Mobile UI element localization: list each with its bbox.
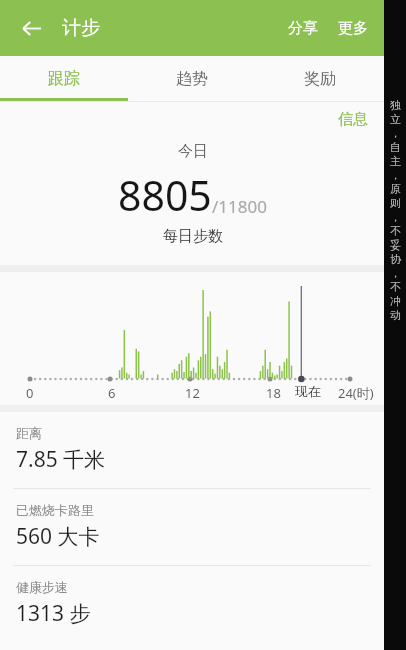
staticText: 12 — [185, 384, 200, 402]
staticText: 自 — [390, 140, 401, 154]
button[interactable]: 跟踪 — [0, 56, 128, 101]
staticText: 则 — [390, 196, 401, 210]
staticText: 0 — [26, 384, 34, 402]
staticText: 24(时) — [338, 384, 374, 402]
staticText: 更多 — [338, 19, 368, 38]
button[interactable]: Back — [8, 5, 54, 51]
button[interactable]: 健康步速 — [0, 565, 384, 642]
staticText: 7.85 千米 — [16, 445, 106, 474]
staticText: 健康步速 — [16, 579, 68, 595]
staticText: ， — [390, 168, 401, 182]
staticText: 协 — [390, 252, 401, 266]
staticText: ， — [390, 210, 401, 224]
staticText: 原 — [390, 182, 401, 196]
staticText: 距离 — [16, 425, 42, 441]
staticText: 信息 — [338, 110, 368, 129]
staticText: 分享 — [288, 19, 318, 38]
button[interactable]: 信息 — [326, 102, 380, 137]
staticText: 动 — [390, 308, 401, 322]
staticText: 18 — [266, 384, 281, 402]
staticText: 560 大卡 — [16, 522, 100, 551]
staticText: /11800 — [212, 195, 267, 218]
staticText: 已燃烧卡路里 — [16, 502, 94, 518]
staticText: 1313 步 — [16, 599, 91, 628]
button[interactable]: 更多 — [328, 5, 378, 52]
staticText: 计步 — [62, 16, 100, 40]
staticText: 独 — [390, 98, 401, 112]
staticText: 不 — [390, 224, 401, 238]
staticText: 妥 — [390, 238, 401, 252]
button[interactable]: 趋势 — [128, 56, 256, 101]
staticText: 冲 — [390, 294, 401, 308]
staticText: ， — [390, 266, 401, 280]
button[interactable]: 分享 — [278, 5, 328, 52]
staticText: 立 — [390, 112, 401, 126]
button[interactable]: 已燃烧卡路里 — [0, 488, 384, 565]
staticText: ， — [390, 126, 401, 140]
staticText: 奖励 — [304, 69, 336, 89]
button[interactable]: 0 — [0, 272, 384, 405]
staticText: 现在 — [295, 383, 321, 399]
button[interactable]: 奖励 — [256, 56, 384, 101]
staticText: 主 — [390, 154, 401, 168]
button[interactable]: 距离 — [0, 412, 384, 488]
staticText: 趋势 — [176, 69, 208, 89]
staticText: 不 — [390, 280, 401, 294]
staticText: 今日 — [178, 142, 208, 161]
staticText: 跟踪 — [48, 69, 80, 89]
staticText: 6 — [108, 384, 116, 402]
staticText: 8805 — [118, 167, 212, 223]
staticText: 每日步数 — [163, 227, 223, 246]
